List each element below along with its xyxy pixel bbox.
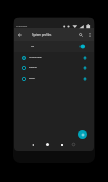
button[interactable]: Switch keyboard	[69, 140, 78, 149]
button[interactable]: Default	[14, 62, 94, 73]
button[interactable]: Home	[43, 140, 52, 149]
button[interactable]: Back	[28, 140, 37, 149]
button[interactable]: Add profile	[78, 130, 87, 139]
button[interactable]: Navigate up	[14, 28, 25, 41]
button[interactable]: Profile settings	[82, 73, 88, 84]
button[interactable]: Search	[76, 28, 86, 41]
staticText: Cyanogen	[16, 24, 28, 27]
button[interactable]: Silent	[14, 73, 94, 84]
button[interactable]: On	[14, 41, 94, 52]
staticText: Silent	[29, 77, 35, 80]
button[interactable]: More options	[86, 28, 94, 41]
button[interactable]: Profile settings	[82, 52, 88, 63]
staticText: On	[31, 45, 35, 48]
button[interactable]: Profile settings	[82, 62, 88, 73]
staticText: Default	[29, 66, 37, 69]
staticText: Automobile	[29, 56, 42, 59]
button[interactable]: Automobile	[14, 52, 94, 63]
staticText: System profiles	[32, 33, 52, 37]
button[interactable]: Recent apps	[57, 140, 66, 149]
